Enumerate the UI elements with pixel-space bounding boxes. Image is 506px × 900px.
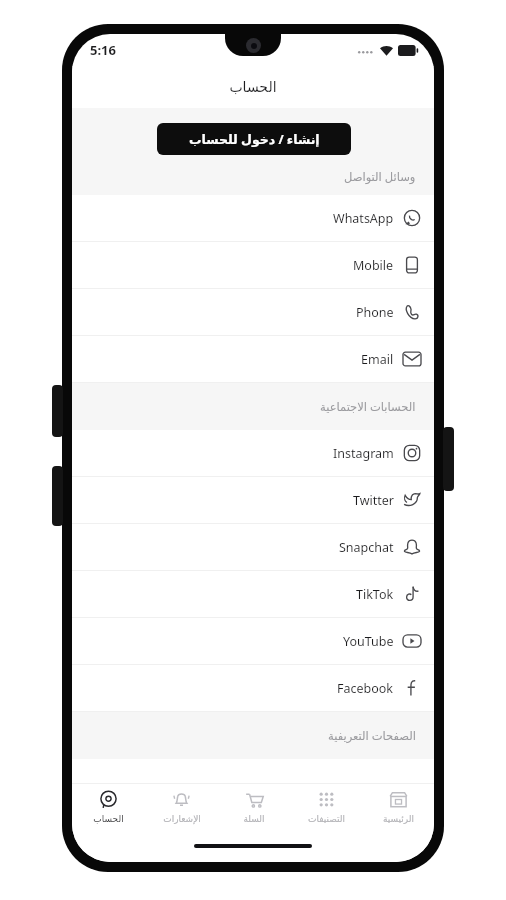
other: الحساب bbox=[99, 790, 118, 809]
button[interactable]: Mobile bbox=[72, 242, 434, 288]
button[interactable]: Email bbox=[72, 336, 434, 382]
staticText: الحساب bbox=[229, 79, 277, 95]
button[interactable]: Instagram bbox=[72, 430, 434, 476]
staticText: الرئيسية bbox=[383, 814, 414, 824]
button[interactable]: Twitter bbox=[72, 477, 434, 523]
button[interactable]: YouTube bbox=[72, 618, 434, 664]
button[interactable]: السلة bbox=[218, 784, 290, 834]
staticText: 5:16 bbox=[90, 41, 116, 59]
button[interactable]: الحساب bbox=[72, 784, 145, 834]
staticText: Facebook bbox=[337, 680, 394, 697]
button[interactable]: TikTok bbox=[72, 571, 434, 617]
button[interactable]: Phone bbox=[72, 289, 434, 335]
staticText: Instagram bbox=[333, 445, 394, 462]
staticText: الحساب bbox=[93, 814, 124, 824]
other: التصنيفات bbox=[317, 790, 336, 809]
other: السلة bbox=[245, 790, 264, 809]
button[interactable]: الإشعارات bbox=[145, 784, 218, 834]
staticText: Email bbox=[361, 351, 394, 368]
staticText: إنشاء / دخول للحساب bbox=[189, 131, 320, 148]
other: الرئيسية bbox=[389, 790, 408, 809]
other: الإشعارات bbox=[172, 790, 191, 809]
button[interactable]: WhatsApp bbox=[72, 195, 434, 241]
staticText: السلة bbox=[243, 814, 265, 824]
staticText: YouTube bbox=[343, 633, 394, 650]
staticText: التصنيفات bbox=[308, 814, 345, 824]
button[interactable]: الرئيسية bbox=[362, 784, 434, 834]
staticText: وسائل التواصل bbox=[344, 169, 416, 185]
button[interactable]: التصنيفات bbox=[290, 784, 362, 834]
button[interactable]: Facebook bbox=[72, 665, 434, 711]
staticText: Twitter bbox=[353, 492, 394, 509]
staticText: الحسابات الاجتماعية bbox=[320, 399, 416, 415]
staticText: الصفحات التعريفية bbox=[328, 728, 416, 744]
staticText: الإشعارات bbox=[163, 814, 201, 824]
staticText: Mobile bbox=[353, 257, 394, 274]
staticText: Snapchat bbox=[339, 539, 394, 556]
staticText: WhatsApp bbox=[333, 210, 394, 227]
staticText: TikTok bbox=[356, 586, 394, 603]
button[interactable]: Snapchat bbox=[72, 524, 434, 570]
staticText: Phone bbox=[356, 304, 394, 321]
button[interactable]: إنشاء / دخول للحساب bbox=[157, 123, 351, 155]
